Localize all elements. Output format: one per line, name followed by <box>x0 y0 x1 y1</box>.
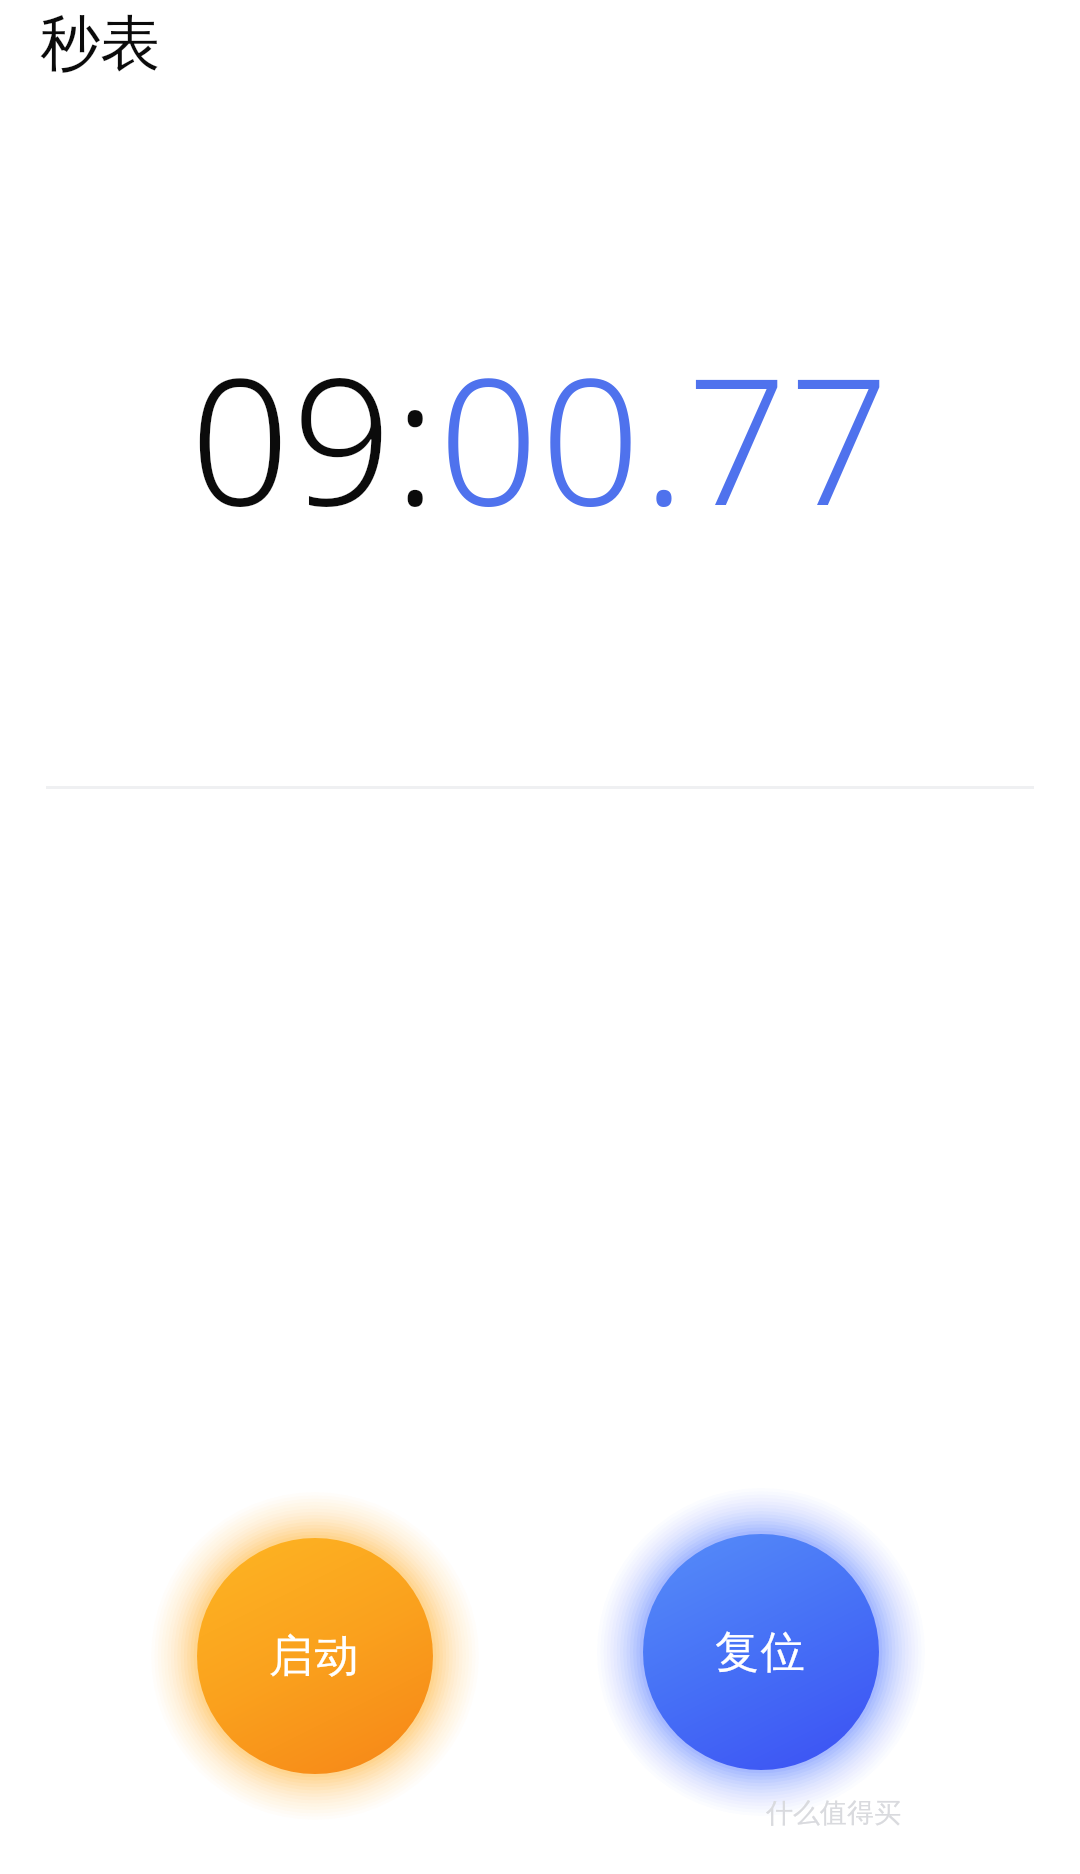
staticText: 复位 <box>715 1625 807 1680</box>
staticText: 09:00.77 <box>190 318 891 538</box>
button[interactable]: Reset stopwatch <box>597 1488 925 1816</box>
staticText: 秒表 <box>40 6 160 82</box>
button[interactable]: 秒表 <box>40 6 160 82</box>
staticText: 什么值得买 <box>766 1796 901 1830</box>
button[interactable]: Start stopwatch <box>151 1492 479 1820</box>
staticText: 启动 <box>269 1629 361 1684</box>
